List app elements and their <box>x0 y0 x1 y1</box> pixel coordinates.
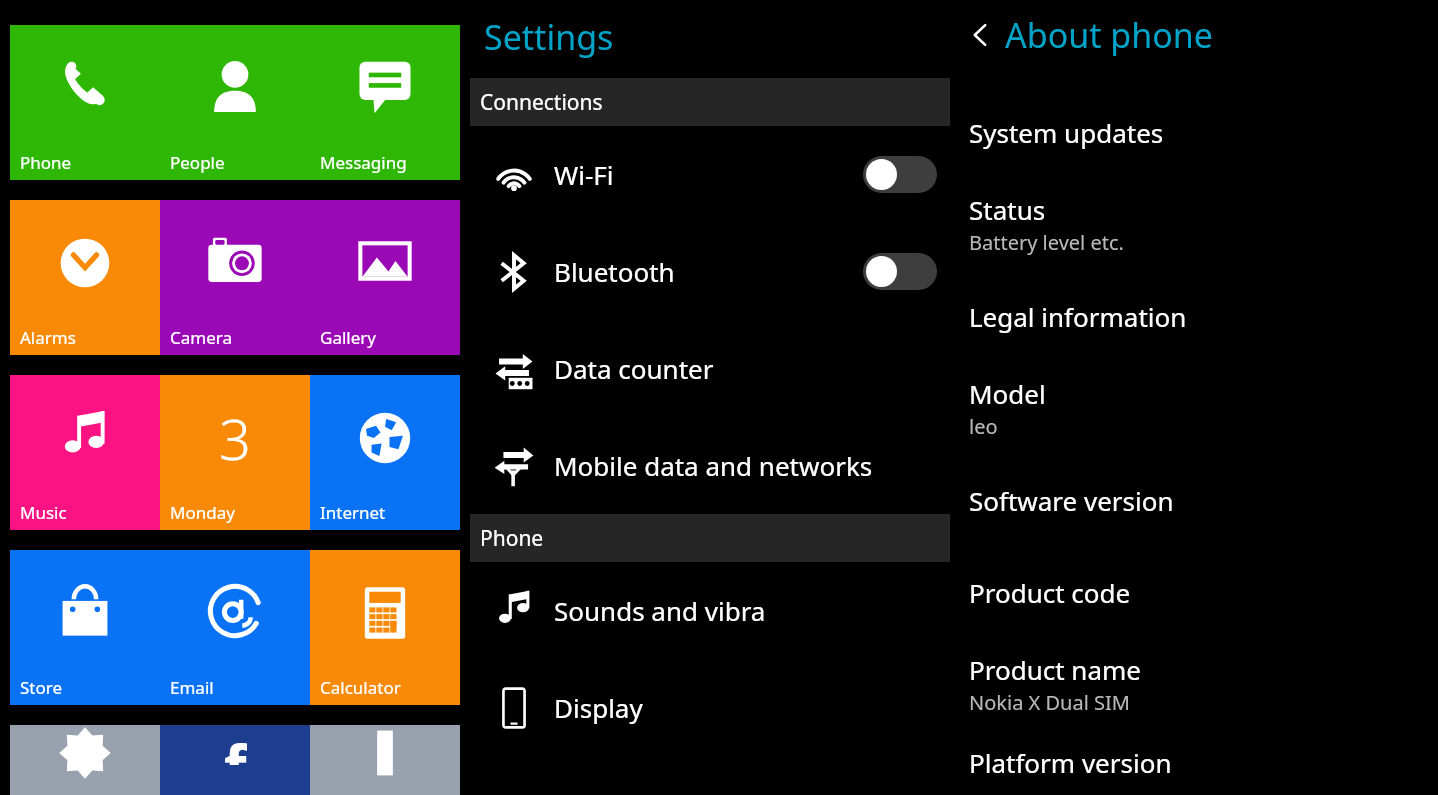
button[interactable]: Platform version <box>955 730 1438 795</box>
button[interactable]: Model <box>955 362 1438 454</box>
button[interactable]: System updates <box>955 86 1438 178</box>
button[interactable]: Product code <box>955 546 1438 638</box>
staticText: Bluetooth <box>554 254 675 289</box>
staticText: Sounds and vibra <box>554 593 766 628</box>
button[interactable]: Camera <box>160 200 310 355</box>
button[interactable]: Phone <box>10 25 460 180</box>
staticText: Display <box>554 690 643 725</box>
button[interactable]: People <box>160 25 310 180</box>
button[interactable]: Data counter <box>470 320 955 417</box>
staticText: Platform version <box>969 745 1172 780</box>
staticText: Product name <box>969 652 1141 687</box>
button[interactable]: Bluetooth toggle <box>863 253 937 290</box>
staticText: Mobile data and networks <box>554 448 873 483</box>
staticText: leo <box>969 413 998 440</box>
button[interactable]: Back <box>955 12 1214 58</box>
staticText: Legal information <box>969 299 1187 334</box>
staticText: Store <box>20 676 63 699</box>
button[interactable]: Email <box>160 550 310 705</box>
staticText: 3 <box>219 400 251 476</box>
staticText: Internet <box>320 501 386 524</box>
staticText: Phone <box>20 151 72 174</box>
staticText: Monday <box>170 501 235 524</box>
staticText: Battery level etc. <box>969 229 1124 256</box>
staticText: About phone <box>1005 12 1214 58</box>
button[interactable]: Store <box>10 550 160 705</box>
button[interactable] <box>310 725 460 795</box>
staticText: Calculator <box>320 676 401 699</box>
button[interactable]: Status <box>955 178 1438 270</box>
button[interactable]: Sounds and vibra <box>470 562 955 659</box>
staticText: Wi-Fi <box>554 157 614 192</box>
button[interactable]: Legal information <box>955 270 1438 362</box>
button[interactable]: Phone <box>10 25 160 180</box>
staticText: f <box>224 725 247 765</box>
staticText: Software version <box>969 483 1174 518</box>
button[interactable]: Mobile data and networks <box>470 417 955 514</box>
staticText: Product code <box>969 575 1131 610</box>
other: Back <box>967 22 993 48</box>
button[interactable]: Internet <box>310 375 460 530</box>
button[interactable]: Calculator <box>310 550 460 705</box>
button[interactable] <box>10 725 160 795</box>
staticText: Music <box>20 501 67 524</box>
button[interactable]: f <box>160 725 310 795</box>
staticText: Status <box>969 192 1046 227</box>
button[interactable]: Product name <box>955 638 1438 730</box>
button[interactable]: Gallery <box>310 200 460 355</box>
staticText: Camera <box>170 326 232 349</box>
button[interactable]: Bluetooth <box>470 223 955 320</box>
staticText: Email <box>170 676 214 699</box>
staticText: Messaging <box>320 151 407 174</box>
button[interactable]: Messaging <box>310 25 460 180</box>
staticText: System updates <box>969 115 1164 150</box>
button[interactable]: Wi-Fi toggle <box>863 156 937 193</box>
staticText: Nokia X Dual SIM <box>969 689 1130 716</box>
button[interactable]: Display <box>470 659 955 756</box>
staticText: Alarms <box>20 326 76 349</box>
button[interactable]: 3 <box>160 375 310 530</box>
staticText: Settings <box>484 14 614 60</box>
staticText: Phone <box>480 524 544 553</box>
staticText: Gallery <box>320 326 376 349</box>
staticText: Model <box>969 376 1046 411</box>
staticText: Data counter <box>554 351 714 386</box>
button[interactable]: Alarms <box>10 200 160 355</box>
staticText: Connections <box>480 88 603 117</box>
button[interactable]: Software version <box>955 454 1438 546</box>
button[interactable]: Music <box>10 375 160 530</box>
staticText: People <box>170 151 225 174</box>
button[interactable]: Wi-Fi <box>470 126 955 223</box>
